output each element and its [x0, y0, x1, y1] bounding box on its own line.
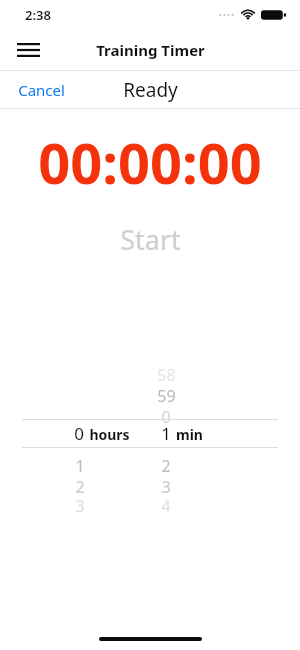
- staticText: Ready: [123, 77, 178, 103]
- staticText: 2: [161, 455, 171, 475]
- staticText: 1: [75, 455, 85, 475]
- staticText: 2:38: [25, 6, 51, 24]
- staticText: 2: [75, 476, 85, 496]
- staticText: 3: [161, 476, 171, 496]
- button[interactable]: Cancel: [6, 73, 77, 107]
- staticText: Cancel: [18, 80, 65, 100]
- staticText: Start: [120, 221, 181, 258]
- staticText: Training Timer: [96, 40, 205, 60]
- staticText: 58: [157, 364, 176, 384]
- button[interactable]: Open navigation menu: [6, 30, 50, 70]
- staticText: 00:00:00: [38, 124, 262, 200]
- staticText: 0: [74, 422, 84, 445]
- button[interactable]: Start: [88, 212, 213, 267]
- staticText: 4: [161, 495, 171, 515]
- staticText: 1: [161, 422, 171, 445]
- staticText: min: [176, 425, 203, 444]
- button[interactable]: 0: [0, 420, 300, 447]
- staticText: 59: [157, 385, 176, 405]
- staticText: 0: [161, 406, 171, 426]
- staticText: 3: [75, 495, 85, 515]
- staticText: hours: [89, 425, 130, 444]
